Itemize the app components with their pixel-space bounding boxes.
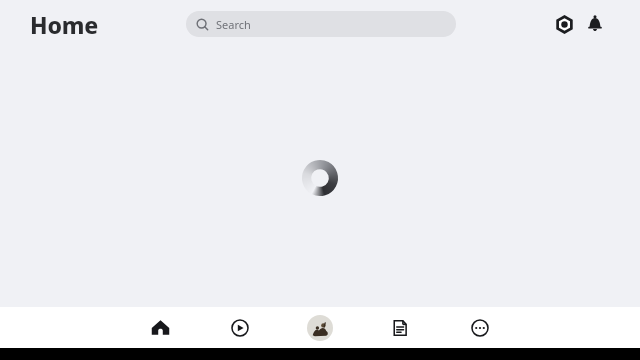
button[interactable]: Profile [280, 307, 360, 348]
button[interactable]: Rewards [552, 12, 576, 36]
button[interactable]: Videos [200, 307, 280, 348]
staticText: Home [30, 9, 98, 40]
button[interactable]: Notifications [583, 12, 607, 36]
button[interactable]: More [440, 307, 520, 348]
staticText: Search [216, 17, 251, 32]
button[interactable]: Search [186, 11, 456, 37]
button[interactable]: Notes [360, 307, 440, 348]
button[interactable]: Home [120, 307, 200, 348]
